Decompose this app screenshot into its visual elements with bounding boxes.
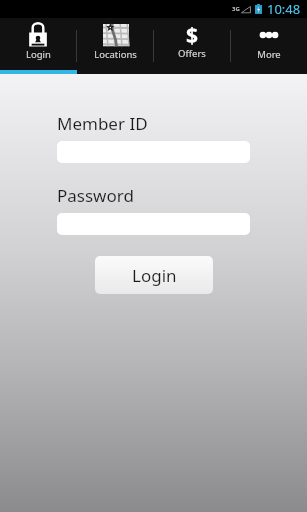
staticText: 3G xyxy=(232,5,240,13)
staticText: More xyxy=(257,48,281,61)
staticText: Member ID xyxy=(57,112,148,135)
button[interactable]: Locations xyxy=(77,18,153,74)
staticText: 10:48 xyxy=(267,0,301,18)
button[interactable]: Login xyxy=(95,256,213,294)
staticText: Login xyxy=(132,264,177,287)
button[interactable]: More xyxy=(231,18,307,74)
staticText: Password xyxy=(57,184,134,207)
button[interactable]: $ xyxy=(154,18,230,74)
staticText: Login xyxy=(26,48,51,61)
button[interactable]: Login xyxy=(0,18,76,74)
staticText: Locations xyxy=(94,48,137,61)
staticText: $ xyxy=(186,21,199,47)
staticText: Offers xyxy=(178,47,206,60)
